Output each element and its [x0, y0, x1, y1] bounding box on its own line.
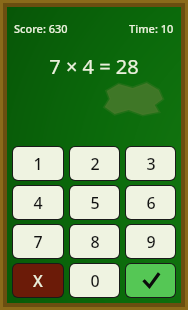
button[interactable]: 0 — [70, 264, 119, 297]
staticText: Time: 10 — [129, 21, 174, 36]
button[interactable]: 6 — [126, 186, 175, 219]
button[interactable]: Submit answer — [126, 264, 175, 297]
staticText: X — [33, 270, 43, 292]
button[interactable]: 3 — [126, 147, 175, 180]
staticText: Score: 630 — [14, 21, 68, 36]
staticText: 2 — [90, 153, 100, 175]
staticText: 7 × 4 = 28 — [49, 53, 139, 80]
staticText: 1 — [33, 153, 43, 175]
staticText: 6 — [146, 192, 156, 214]
button[interactable]: 8 — [70, 225, 119, 258]
button[interactable]: 5 — [70, 186, 119, 219]
staticText: 4 — [33, 192, 43, 214]
staticText: 3 — [146, 153, 156, 175]
button[interactable]: 7 — [13, 225, 63, 258]
staticText: 8 — [90, 231, 100, 253]
button[interactable]: 9 — [126, 225, 175, 258]
button[interactable]: 2 — [70, 147, 119, 180]
staticText: 5 — [90, 192, 100, 214]
staticText: 7 — [33, 231, 43, 253]
button[interactable]: X — [13, 264, 63, 297]
button[interactable]: 1 — [13, 147, 63, 180]
staticText: 0 — [90, 270, 100, 292]
staticText: 9 — [146, 231, 156, 253]
button[interactable]: 4 — [13, 186, 63, 219]
